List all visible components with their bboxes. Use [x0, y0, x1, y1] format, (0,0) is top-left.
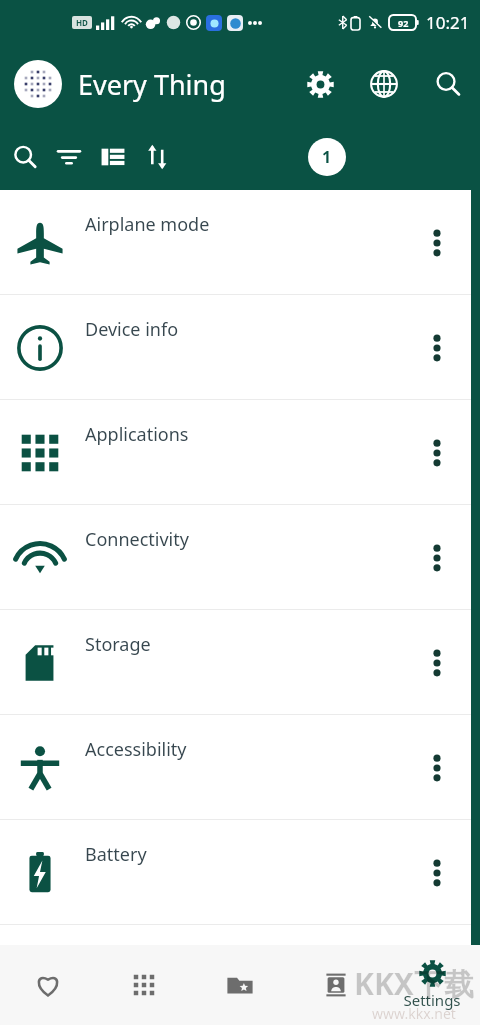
- staticText: Storage: [85, 632, 151, 657]
- staticText: Device info: [85, 317, 179, 342]
- button[interactable]: More options for Battery: [420, 856, 454, 890]
- button[interactable]: Applications: [0, 400, 480, 505]
- button[interactable]: More options for Applications: [420, 436, 454, 470]
- staticText: 10:21: [426, 11, 470, 34]
- staticText: Connectivity: [85, 527, 189, 552]
- button[interactable]: More options for Device info: [420, 331, 454, 365]
- button[interactable]: Apps: [96, 945, 192, 1025]
- staticText: Airplane mode: [85, 212, 210, 237]
- staticText: 1: [322, 146, 332, 168]
- button[interactable]: Every Thing: [78, 66, 226, 103]
- staticText: 92: [398, 17, 409, 29]
- staticText: KKX下载: [354, 963, 474, 1004]
- button[interactable]: List view: [100, 144, 126, 170]
- button[interactable]: Filter: [56, 144, 82, 170]
- staticText: Applications: [85, 422, 189, 447]
- button[interactable]: Accessibility: [0, 715, 480, 820]
- button[interactable]: More options for Accessibility: [420, 751, 454, 785]
- button[interactable]: More options for Connectivity: [420, 541, 454, 575]
- staticText: Accessibility: [85, 737, 187, 762]
- staticText: HD: [76, 17, 88, 28]
- button[interactable]: More options for Airplane mode: [420, 226, 454, 260]
- button[interactable]: Device info: [0, 295, 480, 400]
- button[interactable]: Storage: [0, 610, 480, 715]
- staticText: Battery: [85, 842, 147, 867]
- button[interactable]: Folders: [192, 945, 288, 1025]
- button[interactable]: More options for Storage: [420, 646, 454, 680]
- button[interactable]: Settings: [307, 71, 334, 98]
- button[interactable]: Battery: [0, 820, 480, 925]
- button[interactable]: Airplane mode: [0, 190, 480, 295]
- button[interactable]: Sort: [144, 144, 170, 170]
- button[interactable]: Contacts: [288, 945, 384, 1025]
- button[interactable]: Favourites: [0, 945, 96, 1025]
- staticText: www.kkx.net: [372, 1004, 456, 1023]
- button[interactable]: Connectivity: [0, 505, 480, 610]
- button[interactable]: Language: [370, 70, 398, 98]
- button[interactable]: Search: [434, 70, 462, 98]
- button[interactable]: Settings: [384, 945, 480, 1025]
- button[interactable]: Search: [12, 144, 38, 170]
- button[interactable]: App logo: [14, 60, 62, 108]
- button[interactable]: 1: [308, 138, 346, 176]
- staticText: Settings: [403, 990, 461, 1010]
